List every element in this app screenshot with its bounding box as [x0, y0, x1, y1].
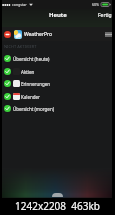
button[interactable]: Fertig	[95, 9, 115, 27]
button[interactable]: Übersicht (morgen)	[0, 102, 115, 115]
staticText: Kalender	[21, 94, 40, 100]
staticText: Aktien	[21, 69, 35, 75]
button[interactable]: WeatherPro	[0, 27, 115, 41]
staticText: Übersicht (heute)	[13, 56, 50, 62]
button[interactable]: Aktien	[0, 65, 115, 78]
other: Reorder	[105, 32, 112, 37]
staticText: congstar	[12, 2, 27, 7]
staticText: NICHT AKTIVIERT	[4, 44, 37, 49]
staticText: Erinnerungen	[21, 81, 51, 87]
staticText: Fertig	[98, 12, 112, 19]
staticText: 60%	[92, 2, 100, 7]
button[interactable]: Übersicht (heute)	[0, 52, 115, 65]
button[interactable]: Erinnerungen	[0, 77, 115, 90]
staticText: Heute	[49, 11, 67, 19]
other: Wi-Fi	[29, 3, 33, 7]
staticText: WeatherPro	[24, 31, 52, 38]
staticText: Übersicht (morgen)	[13, 106, 55, 112]
button[interactable]: Kalender	[0, 90, 115, 103]
staticText: 1242x2208 463kb	[15, 199, 100, 213]
